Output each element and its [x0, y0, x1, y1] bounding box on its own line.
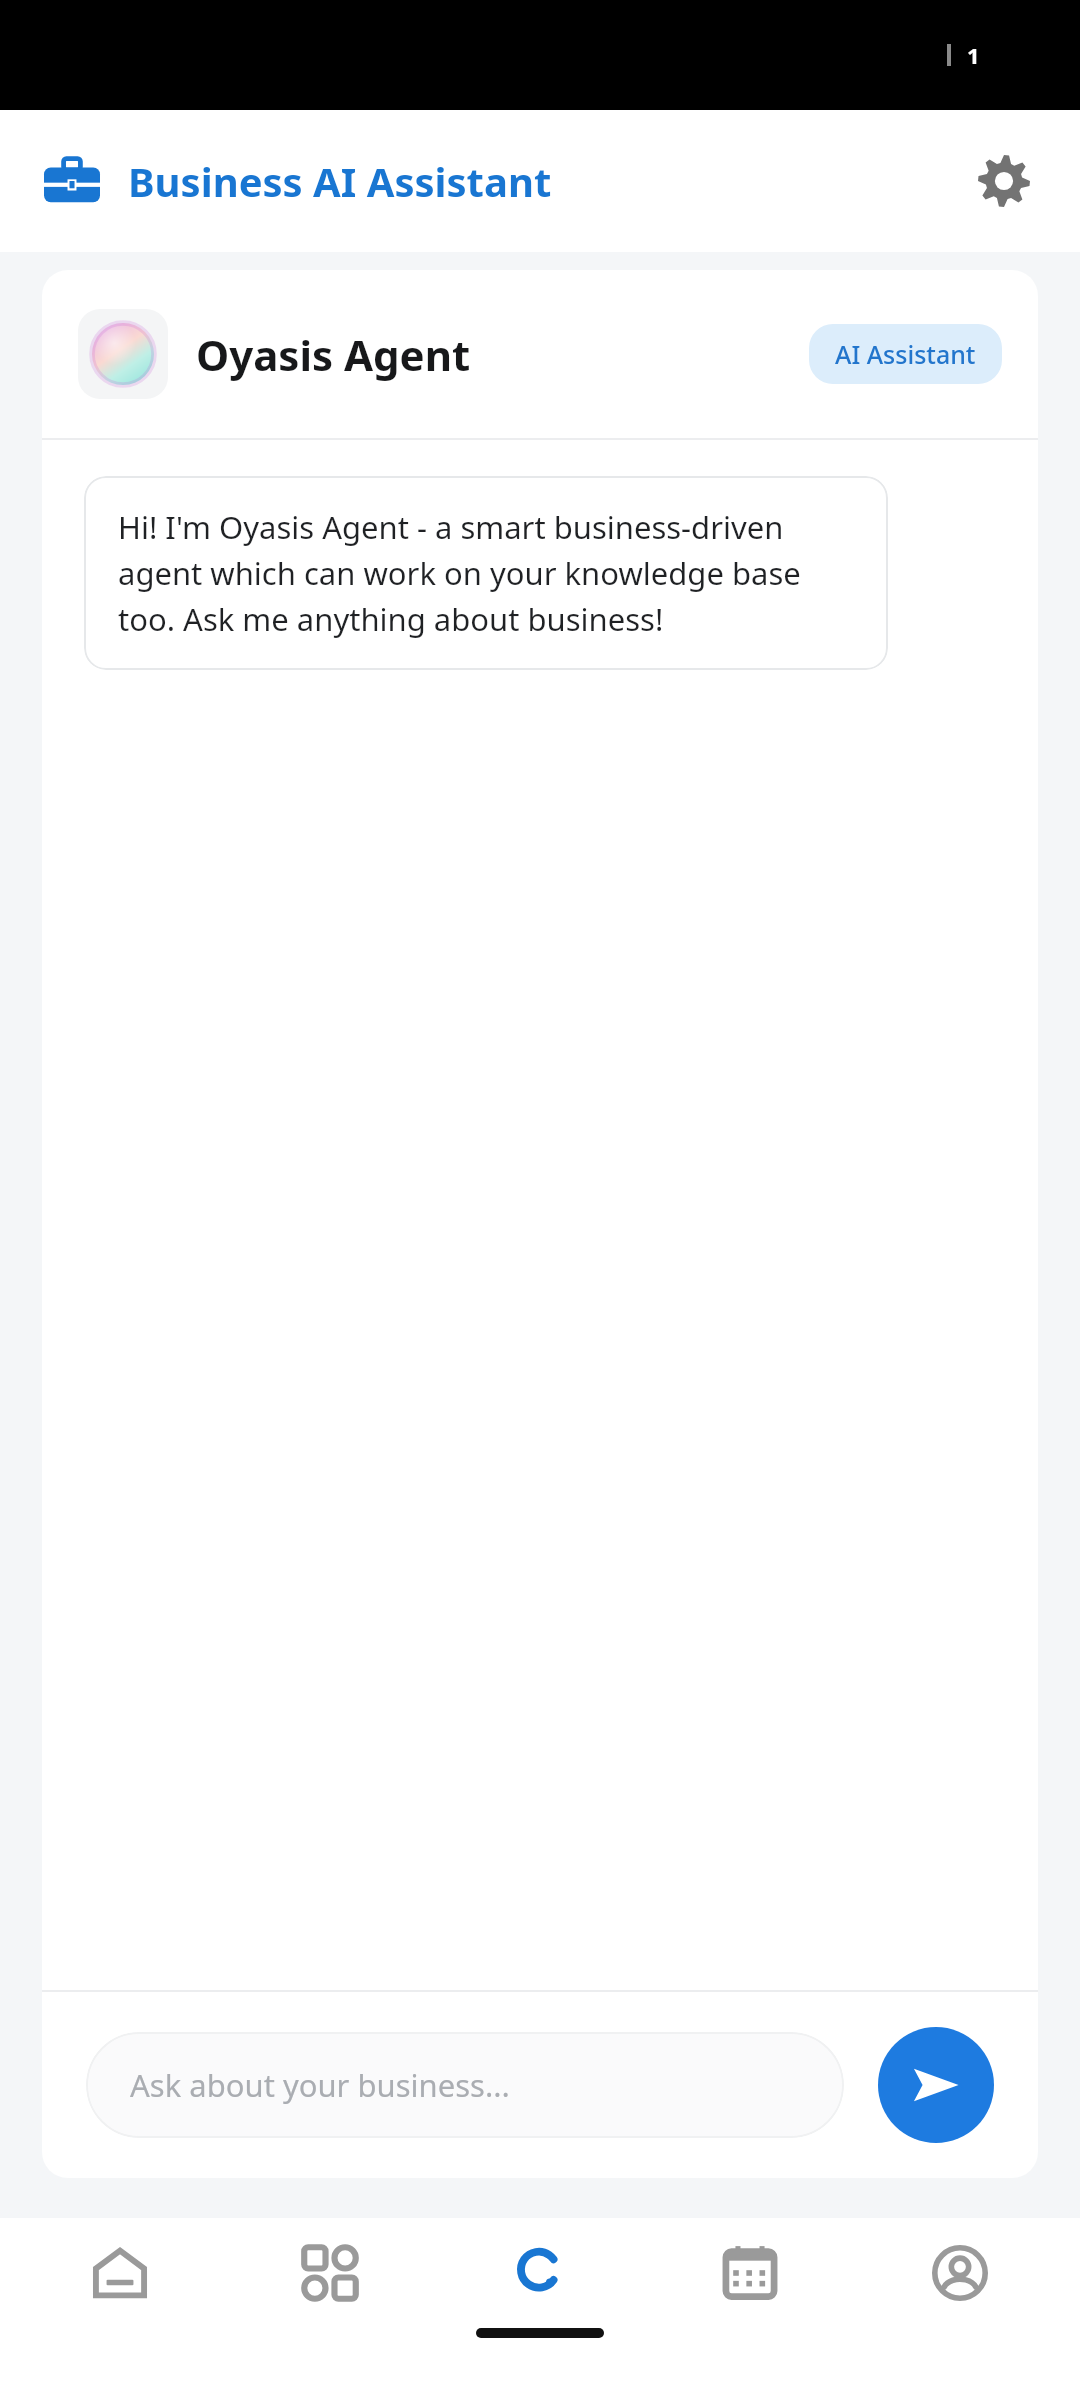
staticText: 1 [967, 40, 980, 70]
staticText: Ask about your business... [130, 2064, 510, 2106]
button[interactable]: Assistant [450, 2218, 630, 2328]
button[interactable]: Ask about your business... [86, 2032, 844, 2138]
staticText: Hi! I'm Oyasis Agent - a smart business-… [118, 506, 854, 640]
button[interactable]: Hi! I'm Oyasis Agent - a smart business-… [84, 476, 888, 670]
button[interactable]: Settings [968, 145, 1040, 217]
staticText: Business AI Assistant [128, 154, 552, 208]
button[interactable]: Profile [870, 2218, 1050, 2328]
button[interactable]: Calendar [660, 2218, 840, 2328]
staticText: AI Assistant [835, 337, 976, 371]
button[interactable]: Home [30, 2218, 210, 2328]
button[interactable]: AI Assistant [809, 324, 1002, 384]
button[interactable]: Send [878, 2027, 994, 2143]
staticText: Oyasis Agent [196, 326, 471, 383]
button[interactable]: Apps [240, 2218, 420, 2328]
